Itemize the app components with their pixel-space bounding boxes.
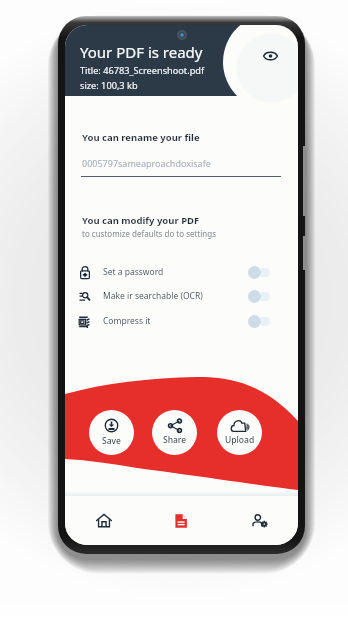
- button[interactable]: Upload: [217, 410, 262, 455]
- staticText: 0005797sameaproachdoxisafe: [82, 157, 211, 169]
- button[interactable]: Account settings: [220, 496, 298, 545]
- staticText: size: 100,3 kb: [80, 79, 138, 92]
- button[interactable]: Toggle: [248, 290, 270, 303]
- staticText: Set a password: [103, 266, 164, 278]
- staticText: Compress it: [103, 315, 151, 327]
- staticText: Make ir searchable (OCR): [103, 290, 203, 302]
- staticText: Upload: [225, 434, 255, 446]
- staticText: You can rename your file: [82, 131, 200, 144]
- staticText: to customize defaults do to settings: [82, 228, 217, 239]
- button[interactable]: Compress it: [78, 311, 270, 331]
- button[interactable]: Toggle: [248, 315, 270, 328]
- button[interactable]: Make ir searchable (OCR): [78, 286, 270, 306]
- staticText: Your PDF is ready: [80, 42, 203, 62]
- button[interactable]: Documents: [142, 496, 220, 545]
- staticText: You can modify your PDF: [82, 214, 200, 227]
- button[interactable]: Save: [89, 410, 134, 455]
- button[interactable]: Share: [152, 410, 197, 455]
- button[interactable]: Set a password: [78, 262, 270, 282]
- button[interactable]: Toggle: [248, 266, 270, 279]
- staticText: Save: [102, 435, 121, 447]
- staticText: Share: [163, 434, 187, 446]
- staticText: Title: 46783_Screenshoot.pdf: [80, 64, 205, 77]
- button[interactable]: Preview PDF: [223, 25, 298, 110]
- button[interactable]: Home: [65, 496, 142, 545]
